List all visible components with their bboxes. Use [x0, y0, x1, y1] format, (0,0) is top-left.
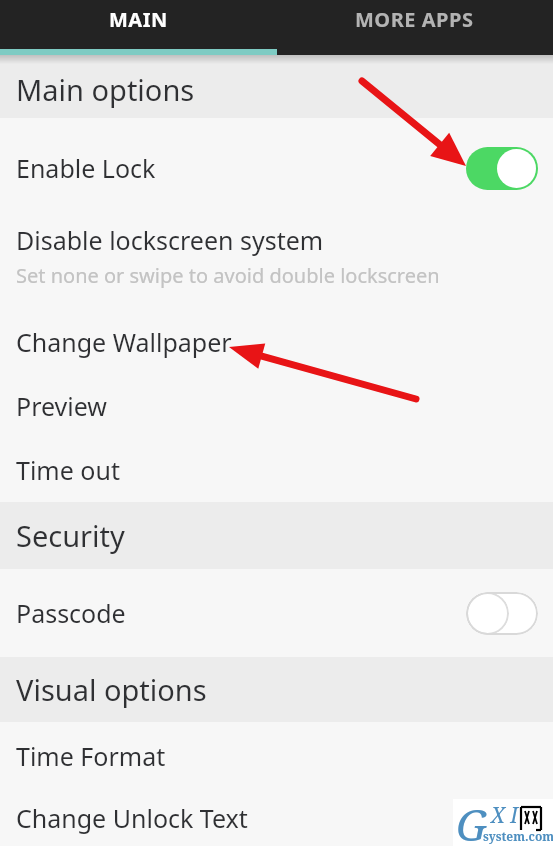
staticText: G	[456, 794, 488, 841]
button[interactable]: Time out	[0, 438, 553, 502]
button[interactable]: Enable Lock	[0, 118, 553, 218]
staticText: Passcode	[16, 596, 126, 630]
staticText: MORE APPS	[355, 6, 474, 33]
staticText: Set none or swipe to avoid double locksc…	[16, 262, 440, 289]
button[interactable]: Change Wallpaper	[0, 310, 553, 374]
staticText: Preview	[16, 389, 107, 423]
button[interactable]: Change Unlock Text	[0, 790, 553, 846]
button[interactable]: Preview	[0, 374, 553, 438]
button[interactable]: Passcode	[0, 569, 553, 657]
staticText: MAIN	[109, 6, 168, 33]
staticText: Security	[16, 516, 125, 555]
button[interactable]: MAIN	[0, 0, 276, 49]
button[interactable]: Time Format	[0, 722, 553, 790]
staticText: X I	[491, 801, 519, 830]
staticText: Time out	[16, 453, 120, 487]
staticText: Change Unlock Text	[16, 801, 248, 835]
staticText: Enable Lock	[16, 151, 156, 185]
button[interactable]: MORE APPS	[276, 0, 553, 49]
staticText: Change Wallpaper	[16, 325, 232, 359]
staticText: Visual options	[16, 670, 207, 709]
staticText: Main options	[16, 70, 195, 109]
staticText: Time Format	[16, 739, 166, 773]
staticText: Disable lockscreen system	[16, 223, 324, 257]
staticText: system.com	[483, 828, 553, 844]
button[interactable]: Disable lockscreen system	[0, 218, 553, 310]
